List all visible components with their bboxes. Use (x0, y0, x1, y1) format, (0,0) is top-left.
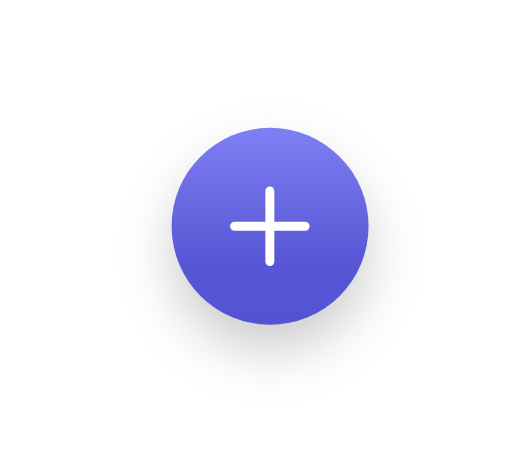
button[interactable]: Add (172, 128, 369, 325)
